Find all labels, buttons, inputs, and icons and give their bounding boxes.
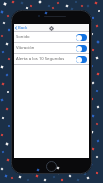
button[interactable]: Settings: [48, 25, 55, 32]
other: Back: [15, 26, 17, 30]
staticText: Vibración: [16, 45, 76, 51]
button[interactable]: Back: [15, 25, 28, 31]
staticText: Alerta a los 10 Segundos: [16, 56, 76, 62]
button[interactable]: Sonido: [14, 32, 89, 42]
staticText: Back: [18, 25, 28, 31]
button[interactable]: Toggle on: [76, 56, 87, 63]
button[interactable]: Home: [46, 161, 57, 172]
button[interactable]: Alerta a los 10 Segundos: [14, 54, 89, 64]
button[interactable]: Vibración: [14, 43, 89, 53]
button[interactable]: Toggle on: [76, 45, 87, 52]
staticText: Sonido: [16, 34, 76, 40]
button[interactable]: Toggle on: [76, 34, 87, 41]
